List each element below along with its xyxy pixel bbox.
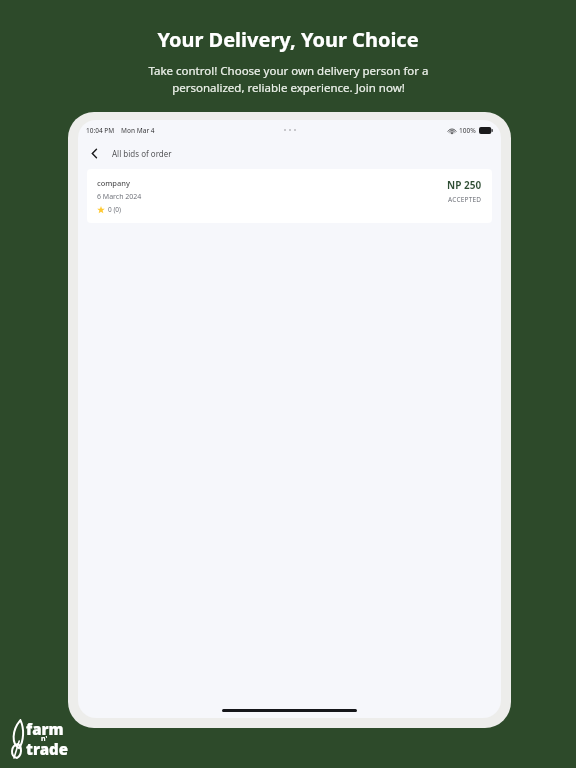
button[interactable]: company: [87, 169, 492, 223]
staticText: Your Delivery, Your Choice: [157, 26, 419, 53]
staticText: Mon Mar 4: [121, 126, 155, 135]
staticText: farm: [26, 719, 64, 739]
staticText: trade: [26, 739, 68, 759]
staticText: n': [41, 734, 48, 744]
staticText: Take control! Choose your own delivery p…: [148, 63, 429, 96]
staticText: All bids of order: [112, 148, 172, 159]
staticText: NP 250: [447, 178, 482, 192]
staticText: company: [97, 178, 130, 188]
staticText: 6 March 2024: [97, 192, 142, 202]
staticText: 100%: [459, 126, 476, 135]
staticText: 0 (0): [108, 205, 122, 214]
staticText: ACCEPTED: [448, 195, 482, 204]
button[interactable]: Back: [84, 143, 104, 163]
staticText: 10:04 PM: [86, 126, 115, 135]
